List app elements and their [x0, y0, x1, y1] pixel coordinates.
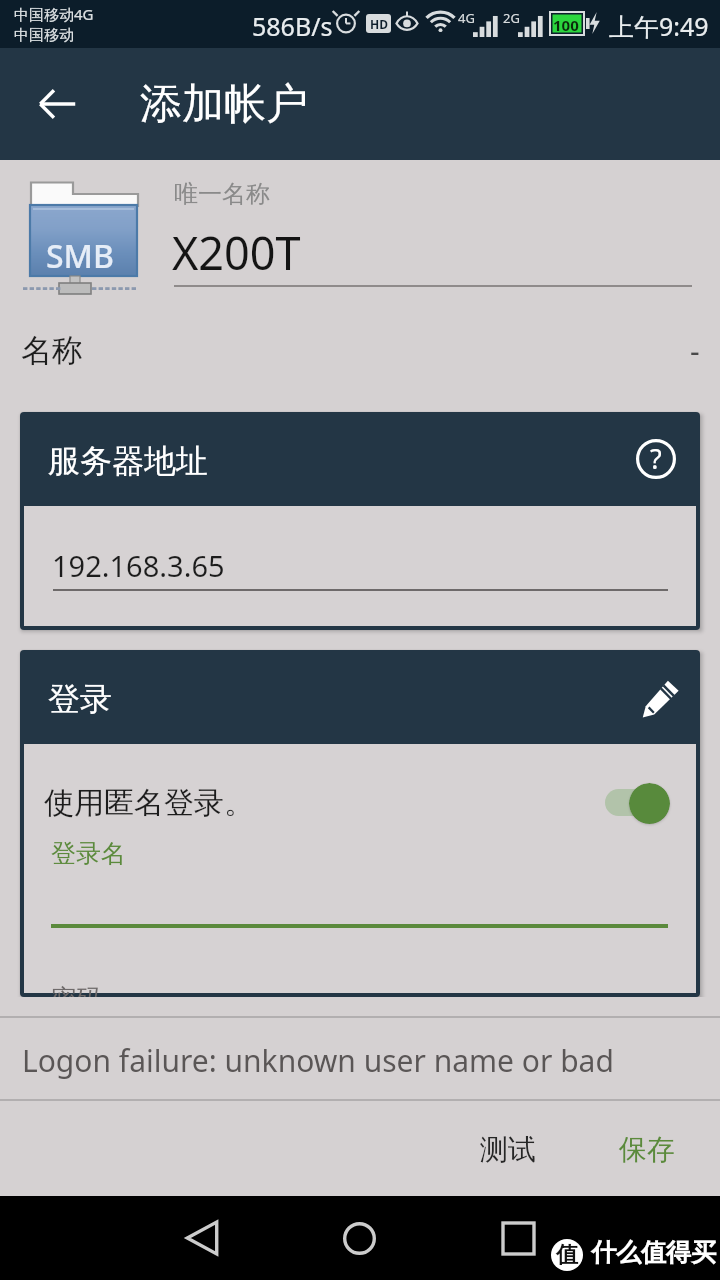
staticText: 唯一名称 — [174, 179, 270, 209]
staticText: 192.168.3.65 — [52, 546, 225, 585]
staticText: 586B/s — [252, 9, 333, 43]
staticText: 登录名 — [51, 838, 126, 869]
staticText: 测试 — [480, 1132, 536, 1167]
button[interactable]: 名称 — [0, 318, 720, 383]
button[interactable]: Recents — [458, 1196, 578, 1280]
staticText: 添加帐户 — [140, 78, 308, 131]
staticText: 100 — [553, 15, 579, 35]
staticText: 保存 — [619, 1132, 675, 1167]
staticText: 密码 — [51, 983, 101, 997]
button[interactable]: 保存 — [597, 1113, 697, 1185]
staticText: 登录 — [48, 679, 112, 719]
staticText: 值 — [556, 1241, 578, 1269]
staticText: 中国移动 — [14, 26, 74, 45]
staticText: - — [690, 330, 700, 371]
button[interactable]: Back — [26, 73, 88, 135]
staticText: X200T — [172, 222, 301, 283]
staticText: 什么值得买 — [591, 1237, 716, 1268]
staticText: 4G — [458, 9, 475, 27]
staticText: 上午9:49 — [609, 9, 709, 43]
staticText: 服务器地址 — [48, 441, 208, 481]
staticText: HD — [370, 16, 388, 32]
button[interactable]: Back — [142, 1196, 262, 1280]
staticText: Logon failure: unknown user name or bad — [22, 1040, 614, 1081]
staticText: 使用匿名登录。 — [44, 784, 254, 822]
button[interactable]: Use anonymous login — [580, 779, 671, 827]
button[interactable]: Help — [629, 432, 683, 486]
button[interactable]: 测试 — [458, 1113, 558, 1185]
button[interactable]: Edit — [629, 670, 683, 724]
staticText: SMB — [46, 234, 114, 278]
staticText: 2G — [503, 9, 520, 27]
staticText: 中国移动4G — [14, 4, 94, 24]
button[interactable]: Home — [299, 1196, 419, 1280]
button[interactable]: 使用匿名登录。 — [24, 744, 696, 836]
staticText: ? — [650, 440, 662, 477]
staticText: 名称 — [21, 331, 83, 370]
